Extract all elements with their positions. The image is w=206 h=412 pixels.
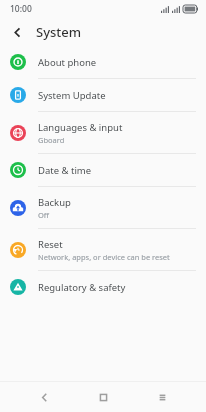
staticText: System xyxy=(36,23,82,41)
button[interactable]: Backup xyxy=(0,187,206,228)
staticText: Languages & input xyxy=(38,121,123,134)
staticText: Off xyxy=(38,210,50,220)
button[interactable]: About phone xyxy=(0,46,206,78)
staticText: Reset xyxy=(38,238,63,251)
button[interactable]: Back xyxy=(6,21,28,43)
staticText: System Update xyxy=(38,89,106,102)
staticText: Backup xyxy=(38,196,71,209)
staticText: Gboard xyxy=(38,135,65,145)
button[interactable]: Recents xyxy=(147,382,177,412)
button[interactable]: Back xyxy=(29,382,59,412)
staticText: Date & time xyxy=(38,164,92,177)
staticText: Network, apps, or device can be reset xyxy=(38,252,170,262)
button[interactable]: System Update xyxy=(0,79,206,111)
button[interactable]: Languages & input xyxy=(0,112,206,153)
staticText: About phone xyxy=(38,56,97,69)
button[interactable]: Date & time xyxy=(0,154,206,186)
staticText: 10:00 xyxy=(10,3,32,15)
staticText: Regulatory & safety xyxy=(38,281,126,294)
button[interactable]: Reset xyxy=(0,229,206,270)
button[interactable]: Home xyxy=(88,382,118,412)
button[interactable]: Regulatory & safety xyxy=(0,271,206,303)
